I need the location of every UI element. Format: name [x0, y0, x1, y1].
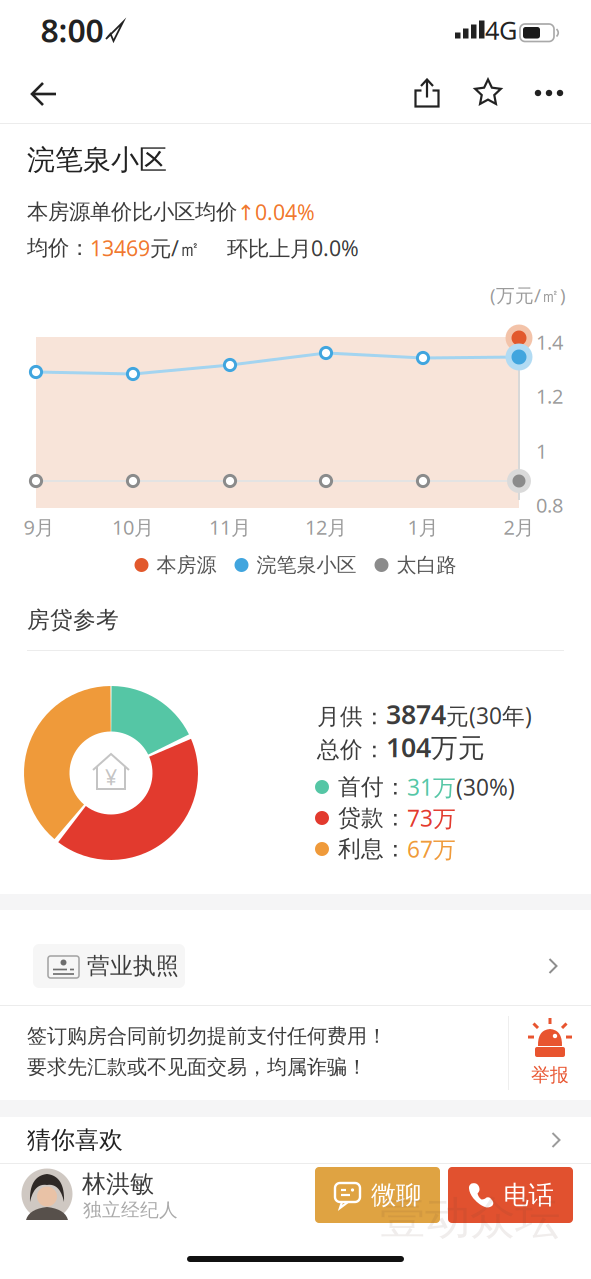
- button[interactable]: [16, 66, 72, 122]
- button[interactable]: [462, 65, 514, 121]
- staticText: 房贷参考: [27, 606, 119, 634]
- staticText: 环比上月0.0%: [227, 234, 359, 262]
- staticText: 0.8: [536, 492, 563, 518]
- staticText: 太白路: [396, 553, 456, 577]
- button[interactable]: 微聊: [315, 1167, 440, 1223]
- staticText: 1.2: [536, 383, 563, 409]
- staticText: 本房源: [156, 553, 216, 577]
- staticText: 1月: [407, 514, 438, 540]
- staticText: 104万元: [386, 729, 485, 765]
- staticText: 本房源单价比小区均价: [27, 199, 237, 225]
- staticText: 浣笔泉小区: [256, 553, 356, 577]
- staticText: 4G: [485, 13, 517, 47]
- staticText: 总价：: [317, 736, 386, 764]
- button[interactable]: 电话: [448, 1167, 573, 1223]
- staticText: 林洪敏: [82, 1169, 154, 1199]
- staticText: 浣笔泉小区: [27, 143, 167, 177]
- staticText: (30年): [469, 700, 532, 731]
- staticText: 猜你喜欢: [27, 1125, 123, 1155]
- staticText: 签订购房合同前切勿提前支付任何费用！: [27, 1024, 387, 1048]
- button[interactable]: 猜你喜欢: [0, 1117, 591, 1163]
- staticText: 67万: [407, 834, 456, 864]
- staticText: 电话: [503, 1179, 553, 1210]
- staticText: 12月: [305, 514, 347, 540]
- staticText: 营业执照: [87, 952, 179, 980]
- staticText: ¥: [105, 763, 117, 791]
- staticText: 1: [536, 438, 547, 464]
- button[interactable]: [401, 65, 453, 121]
- staticText: 独立经纪人: [83, 1198, 178, 1221]
- staticText: 11月: [209, 514, 251, 540]
- staticText: 13469: [90, 234, 150, 262]
- button[interactable]: [523, 65, 575, 121]
- staticText: 壹动众坛: [380, 1190, 560, 1246]
- staticText: 月供：: [317, 703, 386, 731]
- staticText: 要求先汇款或不见面交易，均属诈骗！: [27, 1055, 367, 1079]
- staticText: 2月: [503, 514, 534, 540]
- staticText: 1.4: [536, 329, 563, 355]
- staticText: ↑0.04%: [237, 198, 315, 226]
- button[interactable]: 营业执照: [0, 924, 591, 1009]
- staticText: 3874: [386, 696, 446, 732]
- staticText: 首付：: [338, 773, 407, 801]
- staticText: 8:00: [40, 9, 103, 51]
- button[interactable]: 举报: [517, 1010, 583, 1090]
- staticText: 贷款：: [338, 804, 407, 832]
- staticText: (万元/㎡): [490, 283, 566, 307]
- staticText: 元/㎡: [150, 234, 200, 262]
- staticText: 微聊: [371, 1179, 421, 1210]
- staticText: 73万: [407, 803, 456, 833]
- staticText: 均价：: [27, 235, 90, 261]
- staticText: 9月: [23, 514, 54, 540]
- staticText: 元: [446, 703, 469, 731]
- staticText: 利息：: [338, 835, 407, 863]
- staticText: (30%): [456, 772, 515, 802]
- staticText: 10月: [112, 514, 154, 540]
- staticText: 举报: [531, 1063, 569, 1086]
- staticText: 31万: [407, 772, 456, 802]
